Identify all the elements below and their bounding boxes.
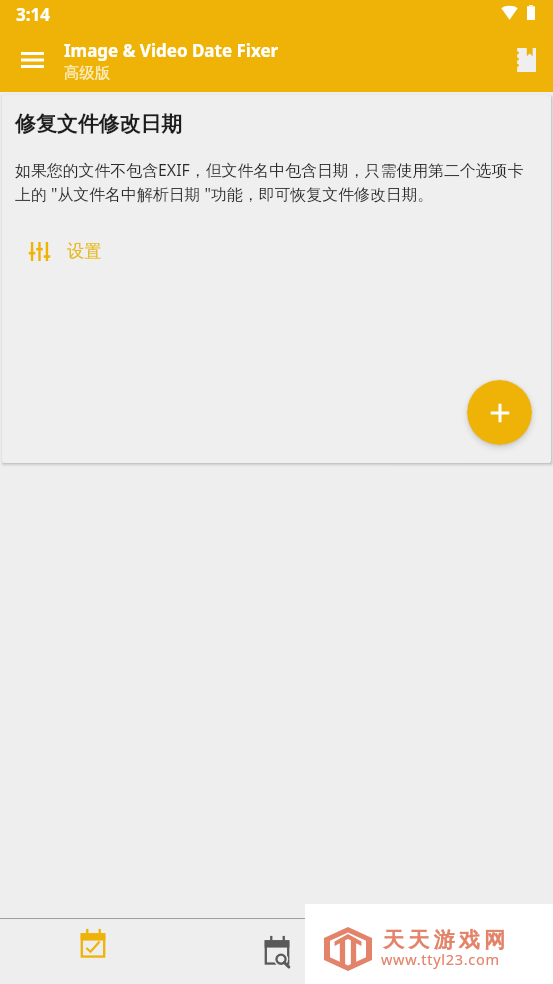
staticText: 3:14 — [16, 3, 50, 26]
button[interactable]: 设置 — [15, 237, 114, 267]
button[interactable]: Parse dates from filename — [185, 919, 369, 984]
staticText: www.ttyl23.com — [381, 949, 500, 969]
staticText: 修复文件修改日期 — [15, 111, 183, 137]
button[interactable]: Other tools — [369, 919, 553, 984]
staticText: 如果您的文件不包含EXIF，但文件名中包含日期，只需使用第二个选项卡上的 "从文… — [15, 159, 537, 205]
staticText: Image & Video Date Fixer — [64, 39, 279, 62]
button[interactable]: Open navigation drawer — [0, 31, 64, 92]
staticText: 天天游戏网 — [381, 927, 507, 953]
button[interactable]: Fix dates — [0, 919, 185, 984]
staticText: 设置 — [67, 240, 102, 262]
button[interactable]: Add files — [467, 380, 532, 445]
button[interactable]: Changelog — [497, 31, 553, 92]
staticText: 高级版 — [64, 63, 110, 82]
